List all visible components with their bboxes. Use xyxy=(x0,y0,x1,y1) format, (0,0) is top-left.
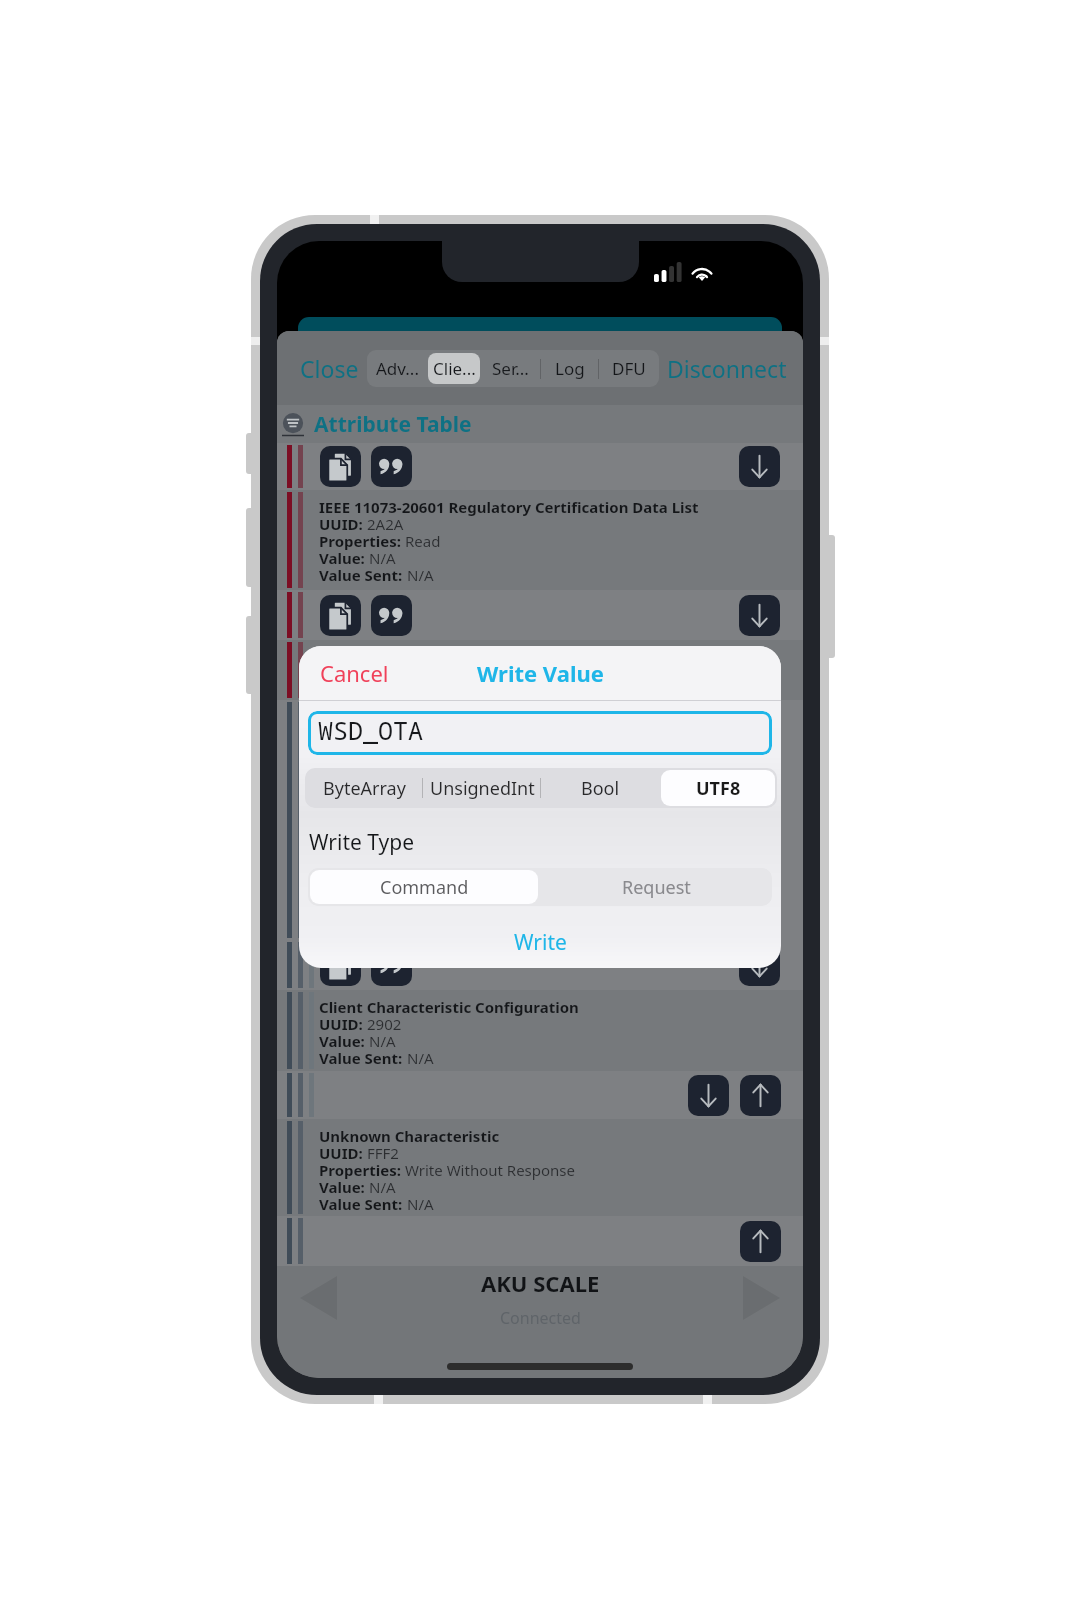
button[interactable]: Adv... xyxy=(367,353,428,384)
staticText: Unknown Characteristic xyxy=(319,1128,500,1145)
button[interactable]: Write xyxy=(740,1221,781,1262)
staticText: Write Type xyxy=(309,828,415,857)
staticText: Value: xyxy=(319,550,365,567)
button[interactable]: Copy xyxy=(320,945,361,986)
staticText: Ser... xyxy=(492,357,529,380)
staticText: Bool xyxy=(581,776,620,801)
staticText: Connected xyxy=(500,1307,581,1329)
staticText: Properties: xyxy=(319,1162,401,1179)
button[interactable]: Ser... xyxy=(480,353,540,384)
button[interactable]: UTF8 xyxy=(661,770,775,806)
staticText: UTF8 xyxy=(696,776,741,801)
button[interactable]: Copy xyxy=(320,446,361,487)
staticText: N/A xyxy=(407,1196,434,1213)
staticText: Value: xyxy=(319,1033,365,1050)
button[interactable]: Close xyxy=(300,353,359,384)
staticText: Client Characteristic Configuration xyxy=(319,999,579,1016)
button[interactable]: Quote xyxy=(371,945,412,986)
staticText: N/A xyxy=(407,567,434,584)
staticText: N/A xyxy=(369,550,396,567)
button[interactable]: WSD_OTA xyxy=(308,711,772,755)
staticText: Value Sent: xyxy=(319,567,403,584)
staticText: UUID: xyxy=(319,516,363,533)
staticText: Properties: xyxy=(319,533,401,550)
button[interactable]: Request xyxy=(542,870,770,904)
button[interactable]: Read xyxy=(739,595,780,636)
staticText: Read xyxy=(405,533,441,550)
staticText: DFU xyxy=(612,357,646,380)
button[interactable]: Copy xyxy=(320,595,361,636)
button[interactable]: Cancel xyxy=(320,658,389,688)
staticText: 2A2A xyxy=(367,516,404,533)
button[interactable]: Read xyxy=(688,1075,729,1116)
button[interactable]: Write xyxy=(740,1075,781,1116)
button[interactable]: Write xyxy=(299,922,781,962)
button[interactable]: Clie... xyxy=(428,353,480,384)
button[interactable]: Read xyxy=(739,945,780,986)
staticText: N/A xyxy=(407,1050,434,1067)
button[interactable]: Bool xyxy=(543,770,657,806)
staticText: UUID: xyxy=(319,1145,363,1162)
staticText: Value Sent: xyxy=(319,1196,403,1213)
staticText: IEEE 11073-20601 Regulatory Certificatio… xyxy=(319,499,699,516)
button[interactable]: Quote xyxy=(371,595,412,636)
staticText: Value Sent: xyxy=(319,1050,403,1067)
staticText: Value: xyxy=(319,1179,365,1196)
staticText: Adv... xyxy=(376,357,419,380)
staticText: Clie... xyxy=(433,357,476,380)
staticText: Write Without Response xyxy=(405,1162,575,1179)
staticText: WSD_OTA xyxy=(318,713,424,747)
button[interactable]: UnsignedInt xyxy=(425,770,539,806)
staticText: ByteArray xyxy=(323,776,406,801)
staticText: UUID: xyxy=(319,1016,363,1033)
staticText: Attribute Table xyxy=(314,410,472,439)
button[interactable]: Disconnect xyxy=(667,353,787,384)
staticText: N/A xyxy=(369,1033,396,1050)
button[interactable]: ByteArray xyxy=(307,770,421,806)
button[interactable]: DFU xyxy=(599,353,659,384)
staticText: 2902 xyxy=(367,1016,402,1033)
staticText: Request xyxy=(622,875,691,900)
staticText: Log xyxy=(555,357,585,380)
staticText: N/A xyxy=(369,1179,396,1196)
staticText: AKU SCALE xyxy=(481,1268,600,1298)
staticText: Write Value xyxy=(477,658,604,688)
button[interactable]: Quote xyxy=(371,446,412,487)
staticText: Write xyxy=(514,928,567,957)
staticText: Command xyxy=(380,875,469,900)
staticText: FFF2 xyxy=(367,1145,399,1162)
button[interactable]: Log xyxy=(541,353,598,384)
staticText: UnsignedInt xyxy=(430,776,535,801)
button[interactable]: Command xyxy=(310,870,538,904)
button[interactable]: Read xyxy=(739,446,780,487)
